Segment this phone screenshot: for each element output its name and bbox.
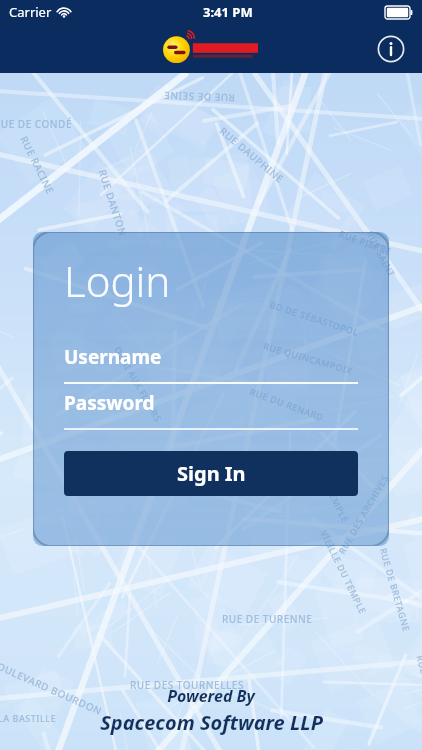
staticText: Password (64, 390, 155, 416)
staticText: RUE PIERRE (338, 227, 393, 257)
staticText: Username (64, 344, 162, 370)
staticText: Spacecom Software LLP (100, 709, 323, 736)
staticText: Login (64, 252, 171, 309)
staticText: VIEILLE DU TEMPLE (318, 528, 369, 616)
staticText: RUE DE TURENNE (222, 612, 313, 626)
staticText: Carrier (9, 3, 52, 21)
staticText: RUE DU RENARD (248, 385, 326, 423)
staticText: BOULEVARD BOURDON (0, 656, 105, 718)
staticText: RUE DE SEINE (163, 89, 235, 105)
staticText: RUE SAINT (364, 229, 399, 279)
staticText: 3:41 PM (203, 3, 253, 21)
staticText: Sign In (177, 460, 246, 487)
staticText: RUE DAUPHINE (217, 124, 287, 186)
staticText: RUE DE CONDÉ (0, 117, 72, 131)
staticText: RUE RACINE (17, 134, 58, 196)
staticText: LA BASTILLE (0, 712, 57, 724)
staticText: RUE DES TOURNELLES (130, 678, 244, 692)
staticText: RUE OBERKAMPF (414, 654, 422, 734)
staticText: BD DE SÉBASTOPOL (268, 298, 361, 338)
button[interactable]: Info (375, 33, 407, 65)
button[interactable]: Password (64, 390, 358, 430)
staticText: Powered By (167, 685, 255, 707)
button[interactable]: Sign In (64, 451, 358, 496)
staticText: RUE QUINCAMPOIX (262, 339, 355, 377)
staticText: RUE DE BRETAGNE (378, 546, 413, 633)
button[interactable]: Username (64, 344, 358, 384)
staticText: QUAI AUX FLEURS (112, 344, 165, 424)
staticText: RUE DANTON (95, 167, 130, 238)
staticText: RUE DU TEMPLE (308, 451, 352, 525)
staticText: RUE DES ARCHIVES (335, 472, 391, 556)
button[interactable]: SM Online (162, 33, 260, 65)
